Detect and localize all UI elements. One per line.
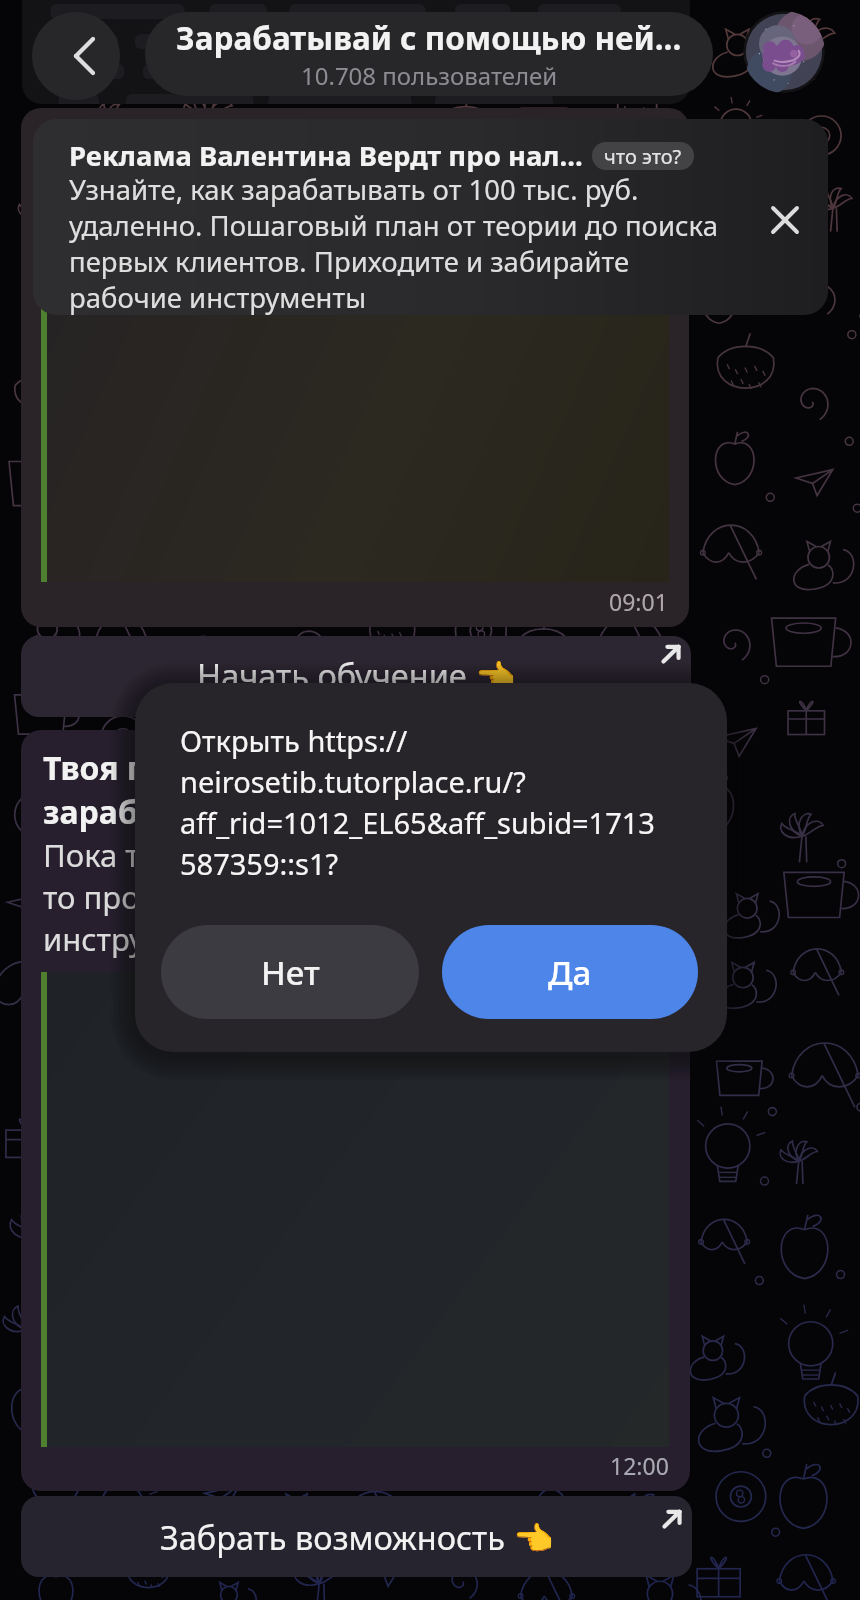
staticText: что это?: [604, 143, 682, 170]
button[interactable]: Твоя подборка для: [21, 730, 690, 1491]
button[interactable]: Open link: [656, 1503, 688, 1535]
staticText: то просто бери все: [43, 876, 327, 918]
staticText: Реклама Валентина Вердт про нал...: [69, 137, 583, 174]
button[interactable]: Начать обучение 👈: [21, 636, 691, 717]
button[interactable]: Да: [442, 925, 698, 1019]
button[interactable]: Open link: [655, 638, 687, 670]
staticText: Начать обучение 👈: [197, 653, 516, 697]
button[interactable]: Profile: [743, 11, 825, 93]
staticText: Пока ты читаешь это: [43, 834, 358, 876]
staticText: Забрать возможность 👈: [160, 1515, 554, 1559]
button[interactable]: 09:01: [21, 108, 689, 627]
staticText: 10.708 пользователей: [301, 59, 558, 92]
staticText: Нет: [261, 950, 320, 995]
staticText: инструменты: [43, 918, 243, 960]
staticText: Узнайте, как зарабатывать от 100 тыс. ру…: [69, 171, 789, 315]
button[interactable]: Нет: [161, 925, 419, 1019]
staticText: 09:01: [609, 586, 668, 617]
button[interactable]: Забрать возможность 👈: [21, 1496, 692, 1577]
staticText: Зарабатывай с помощью ней...: [176, 16, 682, 59]
staticText: заработка в сети: [43, 790, 321, 834]
staticText: Да: [548, 950, 592, 995]
button[interactable]: Реклама Валентина Вердт про нал...: [33, 119, 828, 315]
button[interactable]: Back: [32, 12, 120, 100]
button[interactable]: Close ad: [760, 195, 810, 245]
staticText: Открыть https:// neirosetib.tutorplace.r…: [180, 721, 700, 884]
staticText: Твоя подборка для: [43, 746, 355, 790]
button[interactable]: Зарабатывай с помощью ней...: [145, 12, 713, 96]
staticText: 12:00: [610, 1450, 669, 1481]
